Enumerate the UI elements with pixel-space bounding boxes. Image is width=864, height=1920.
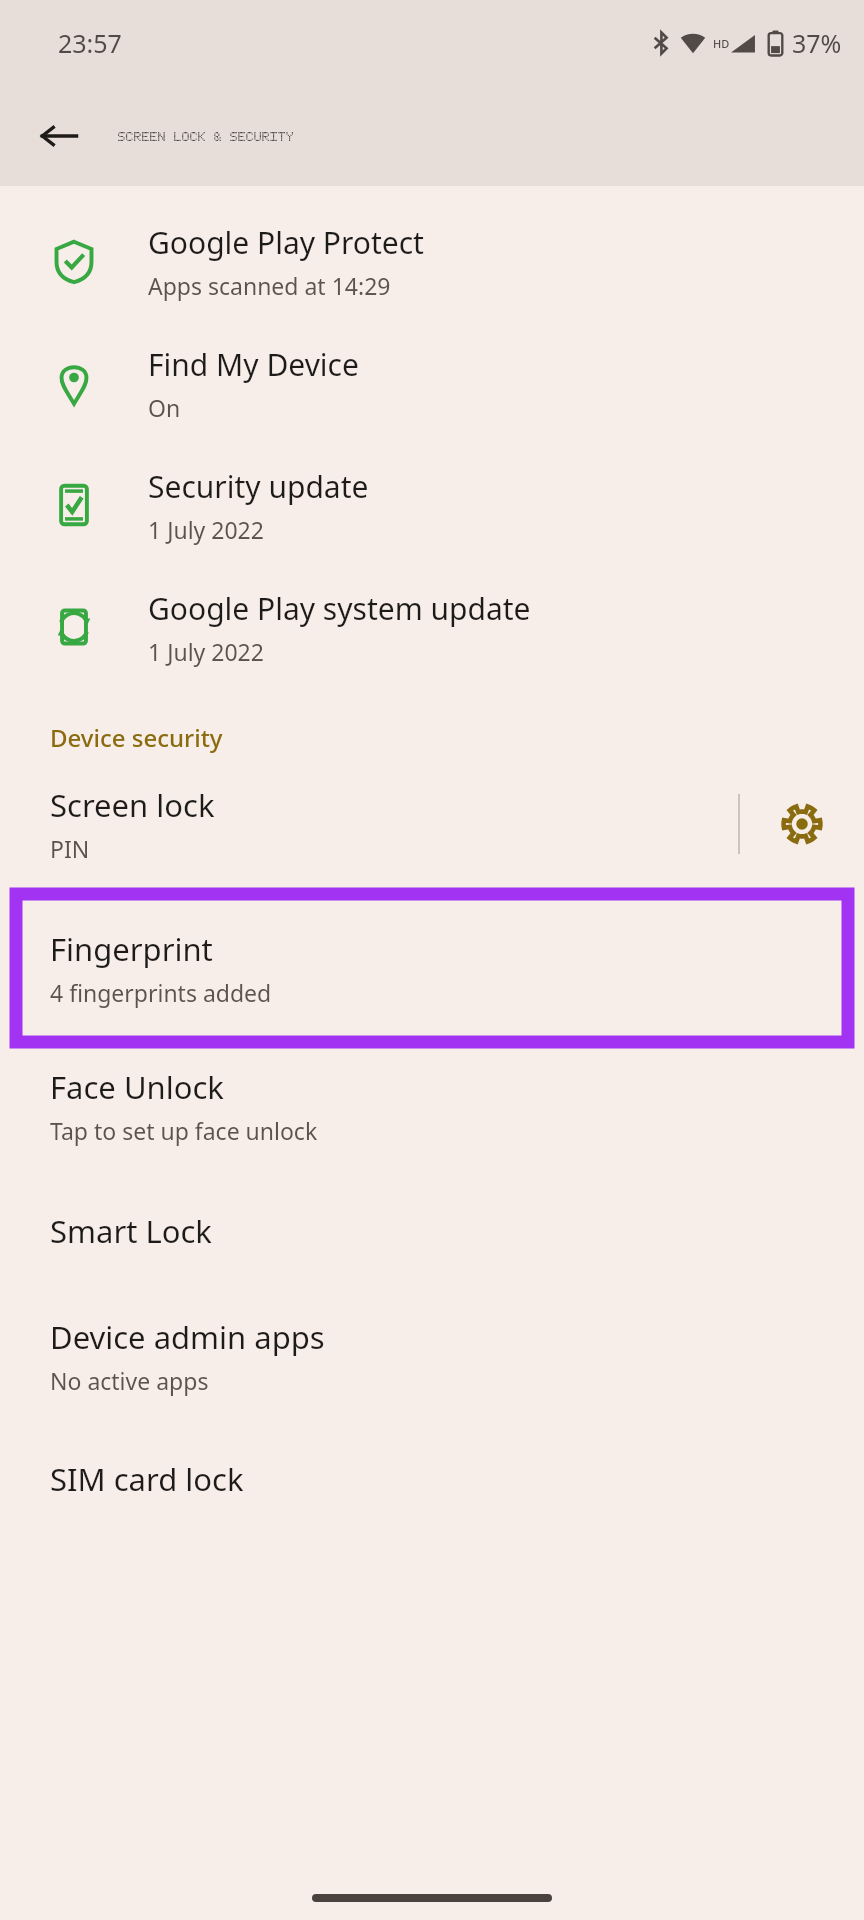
staticText: 23:57 <box>58 26 122 60</box>
staticText: HD <box>713 36 730 51</box>
button[interactable]: SIM card lock <box>0 1420 864 1538</box>
button[interactable]: Screen lock settings <box>740 764 864 884</box>
staticText: Google Play Protect <box>148 222 424 263</box>
button[interactable]: Face Unlock <box>0 1042 864 1170</box>
button[interactable]: Google Play Protect <box>0 200 864 322</box>
other: Bluetooth <box>651 31 671 55</box>
staticText: Fingerprint <box>50 928 213 970</box>
staticText: Find My Device <box>148 344 359 385</box>
staticText: Smart Lock <box>50 1210 212 1252</box>
staticText: On <box>148 392 181 423</box>
button[interactable]: Back <box>0 86 118 186</box>
button[interactable]: Security update <box>0 444 864 566</box>
staticText: 1 July 2022 <box>148 514 264 545</box>
button[interactable]: Fingerprint <box>16 894 848 1042</box>
other: Battery <box>767 30 784 56</box>
other: Signal <box>730 32 756 54</box>
staticText: Security update <box>148 466 369 507</box>
staticText: Apps scanned at 14:29 <box>148 270 391 301</box>
staticText: 37% <box>792 26 842 60</box>
other: Wi-Fi <box>680 32 706 54</box>
staticText: Device admin apps <box>50 1316 325 1358</box>
staticText: Google Play system update <box>148 588 531 629</box>
button[interactable]: Device admin apps <box>0 1292 864 1420</box>
button[interactable]: Google Play system update <box>0 566 864 688</box>
button[interactable]: Smart Lock <box>0 1170 864 1292</box>
staticText: 1 July 2022 <box>148 636 264 667</box>
staticText: Device security <box>50 721 223 754</box>
staticText: Tap to set up face unlock <box>50 1115 318 1146</box>
button[interactable]: Screen lock <box>0 764 738 884</box>
staticText: Face Unlock <box>50 1066 224 1108</box>
staticText: PIN <box>50 833 90 864</box>
button[interactable]: Find My Device <box>0 322 864 444</box>
staticText: No active apps <box>50 1365 209 1396</box>
staticText: SIM card lock <box>50 1458 244 1500</box>
staticText: 4 fingerprints added <box>50 977 272 1008</box>
staticText: Screen lock <box>50 784 215 826</box>
